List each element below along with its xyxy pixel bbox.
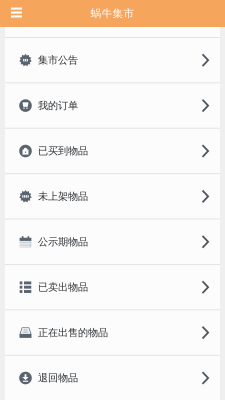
staticText: 我的订单	[38, 99, 78, 112]
staticText: 退回物品	[38, 372, 78, 384]
staticText: 集市公告	[38, 54, 78, 67]
staticText: 正在出售的物品	[38, 326, 108, 339]
button[interactable]: 正在出售的物品	[5, 310, 220, 355]
button[interactable]: 未上架物品	[5, 174, 220, 219]
staticText: 公示期物品	[38, 235, 88, 248]
button[interactable]: 我的订单	[5, 83, 220, 128]
staticText: 蜗牛集市	[90, 7, 134, 20]
staticText: 已卖出物品	[38, 281, 88, 294]
staticText: 未上架物品	[38, 190, 88, 203]
button[interactable]: 退回物品	[5, 356, 220, 400]
button[interactable]: 公示期物品	[5, 220, 220, 264]
button[interactable]: Menu	[6, 0, 27, 26]
staticText: 已买到物品	[38, 145, 88, 157]
button[interactable]: 已买到物品	[5, 129, 220, 173]
button[interactable]: 已卖出物品	[5, 265, 220, 309]
button[interactable]: 集市公告	[5, 38, 220, 82]
